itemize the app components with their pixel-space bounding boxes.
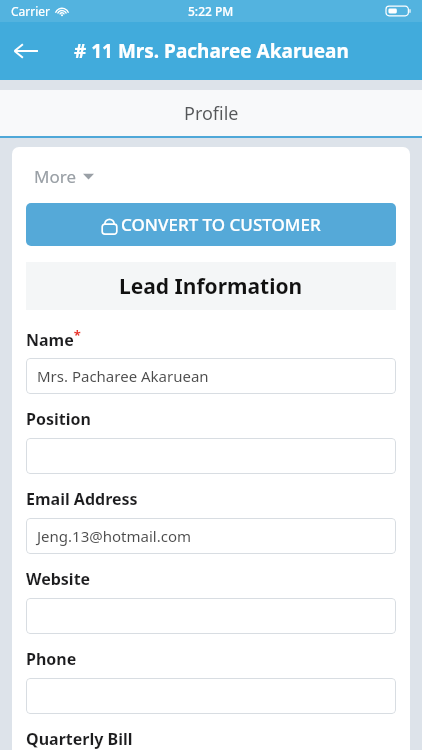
button[interactable] <box>26 438 396 474</box>
staticText: Mrs. Pacharee Akaruean <box>37 366 209 386</box>
staticText: Website <box>26 568 91 590</box>
button[interactable]: More <box>34 165 94 188</box>
button[interactable]: Back <box>0 25 52 77</box>
staticText: Profile <box>184 101 239 126</box>
staticText: More <box>34 165 76 188</box>
staticText: Carrier <box>11 3 51 19</box>
staticText: Position <box>26 408 91 430</box>
button[interactable]: Jeng.13@hotmail.com <box>26 518 396 554</box>
staticText: Phone <box>26 648 77 670</box>
staticText: CONVERT TO CUSTOMER <box>121 213 321 236</box>
button[interactable]: CONVERT TO CUSTOMER <box>26 203 396 246</box>
staticText: Name* <box>26 326 81 350</box>
staticText: Quarterly Bill <box>26 728 133 750</box>
button[interactable]: Profile <box>0 90 422 136</box>
button[interactable] <box>26 678 396 714</box>
staticText: Jeng.13@hotmail.com <box>37 526 191 546</box>
staticText: Email Address <box>26 488 138 510</box>
button[interactable]: Mrs. Pacharee Akaruean <box>26 358 396 394</box>
staticText: Lead Information <box>119 272 303 301</box>
staticText: # 11 Mrs. Pacharee Akaruean <box>74 38 349 64</box>
staticText: 5:22 PM <box>188 3 234 19</box>
button[interactable] <box>26 598 396 634</box>
